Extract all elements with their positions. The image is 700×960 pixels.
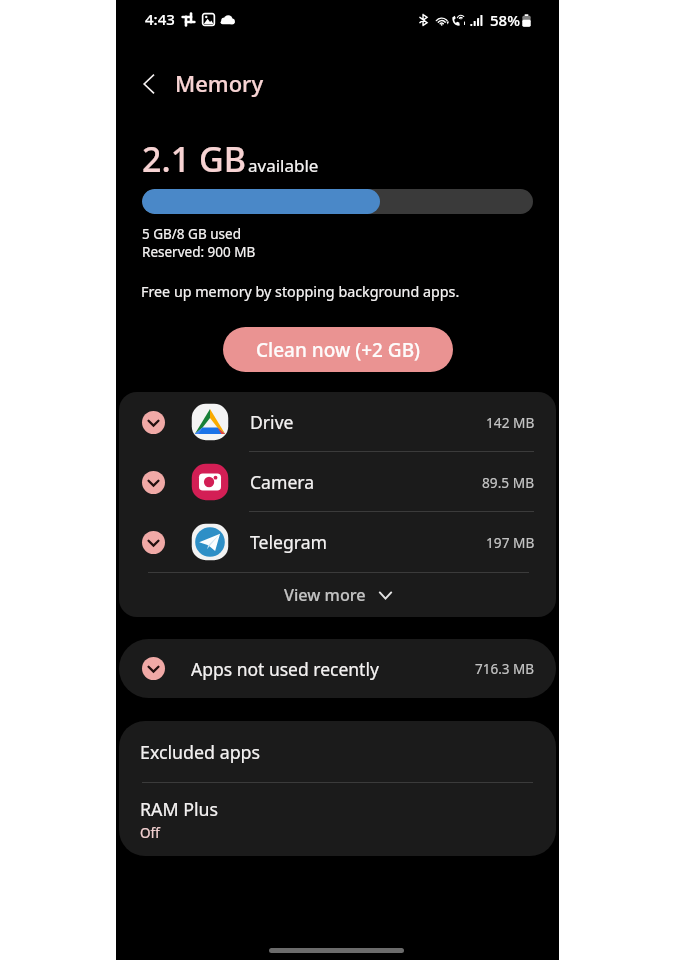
staticText: Excluded apps <box>140 740 261 764</box>
staticText: View more <box>284 584 366 606</box>
staticText: Clean now (+2 GB) <box>256 337 421 363</box>
staticText: RAM Plus <box>140 797 219 821</box>
staticText: 142 MB <box>486 413 535 432</box>
button[interactable]: Excluded apps <box>119 721 556 783</box>
staticText: Drive <box>250 410 294 434</box>
staticText: Off <box>140 824 160 842</box>
staticText: 716.3 MB <box>475 660 535 678</box>
staticText: 58% <box>490 10 520 30</box>
button[interactable]: Back <box>129 64 169 104</box>
staticText: 2.1 GB <box>142 136 246 182</box>
button[interactable]: RAM Plus <box>119 783 556 856</box>
staticText: available <box>248 154 319 177</box>
button[interactable]: Clean now (+2 GB) <box>223 327 453 372</box>
staticText: Camera <box>250 470 315 494</box>
staticText: 89.5 MB <box>482 473 535 492</box>
staticText: Free up memory by stopping background ap… <box>141 282 460 301</box>
staticText: Reserved: 900 MB <box>142 243 256 261</box>
staticText: Telegram <box>250 530 327 554</box>
button[interactable]: Telegram <box>119 512 556 572</box>
button[interactable]: Camera <box>119 452 556 512</box>
staticText: 197 MB <box>486 533 535 552</box>
button[interactable]: Drive <box>119 392 556 452</box>
staticText: 4:43 <box>145 9 175 29</box>
staticText: Apps not used recently <box>191 657 379 681</box>
staticText: Memory <box>175 68 264 98</box>
button[interactable]: Apps not used recently <box>119 639 556 698</box>
staticText: 5 GB/8 GB used <box>142 225 241 243</box>
button[interactable]: View more <box>119 573 556 617</box>
